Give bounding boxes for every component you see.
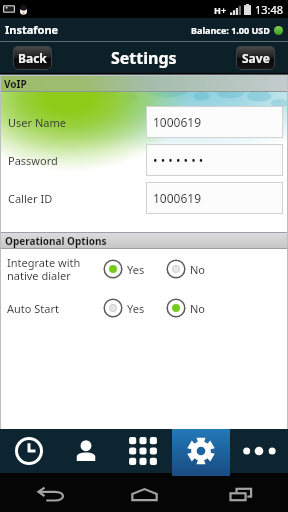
- button[interactable]: Keypad: [114, 429, 172, 473]
- staticText: 13:48: [255, 2, 284, 17]
- staticText: VoIP: [4, 77, 27, 91]
- button[interactable]: No: [166, 259, 206, 279]
- button[interactable]: Yes: [103, 298, 145, 318]
- staticText: Instafone: [5, 22, 59, 37]
- staticText: Yes: [127, 262, 145, 277]
- button[interactable]: Yes: [103, 259, 145, 279]
- button[interactable]: Back: [13, 46, 52, 70]
- staticText: • • • • • • •: [153, 152, 204, 168]
- button[interactable]: Contacts: [57, 429, 114, 473]
- staticText: Caller ID: [8, 191, 53, 206]
- button[interactable]: Recent calls: [0, 429, 57, 473]
- button[interactable]: Settings: [172, 429, 230, 473]
- button[interactable]: 1000619: [146, 106, 283, 138]
- button[interactable]: 1000619: [146, 182, 283, 214]
- staticText: Balance: 1.00 USD: [191, 24, 270, 36]
- staticText: Settings: [111, 47, 177, 69]
- button[interactable]: Save: [236, 46, 275, 70]
- staticText: H+: [214, 4, 227, 16]
- staticText: User Name: [8, 115, 66, 130]
- button[interactable]: • • • • • • •: [146, 144, 283, 176]
- staticText: Save: [242, 50, 270, 66]
- staticText: Operational Options: [5, 234, 107, 248]
- staticText: Back: [18, 50, 47, 66]
- staticText: Password: [8, 153, 58, 168]
- staticText: 1000619: [153, 114, 202, 130]
- staticText: Integrate with native dialer: [7, 255, 81, 283]
- button[interactable]: More: [230, 429, 288, 473]
- button[interactable]: Recents: [212, 476, 270, 512]
- button[interactable]: Home: [115, 476, 173, 512]
- staticText: Auto Start: [7, 301, 60, 316]
- button[interactable]: No: [166, 298, 206, 318]
- staticText: Yes: [127, 301, 145, 316]
- staticText: No: [190, 301, 206, 316]
- button[interactable]: Back: [22, 476, 80, 512]
- staticText: 1000619: [153, 190, 202, 206]
- staticText: No: [190, 262, 206, 277]
